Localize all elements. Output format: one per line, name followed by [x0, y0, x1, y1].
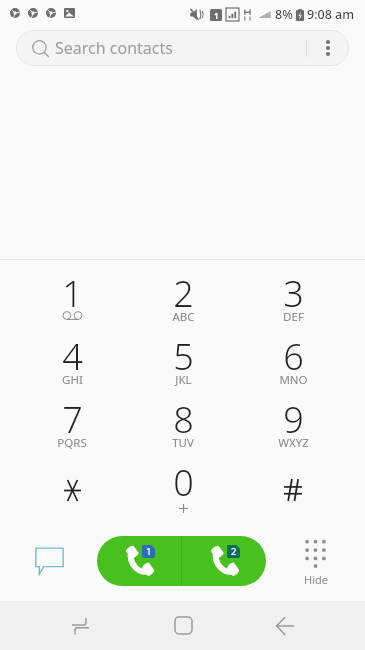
staticText: 9: [283, 395, 304, 444]
staticText: 2: [231, 545, 237, 558]
button[interactable]: Back: [251, 601, 319, 650]
staticText: MNO: [279, 372, 308, 388]
staticText: 5: [173, 332, 194, 381]
staticText: WXYZ: [278, 435, 309, 451]
staticText: 1: [214, 10, 219, 21]
button[interactable]: [253, 454, 333, 516]
button[interactable]: 7: [32, 391, 112, 453]
button[interactable]: 3: [253, 265, 333, 327]
button[interactable]: 6: [253, 328, 333, 390]
button[interactable]: 8: [143, 391, 223, 453]
staticText: TUV: [172, 435, 194, 451]
staticText: 2: [173, 269, 194, 318]
staticText: Search contacts: [55, 37, 173, 59]
staticText: 8%: [275, 6, 293, 23]
staticText: ABC: [172, 309, 195, 325]
button[interactable]: [32, 454, 112, 516]
staticText: 1: [62, 269, 83, 318]
staticText: 4: [62, 332, 83, 381]
button[interactable]: Call with SIM 1: [97, 536, 181, 586]
button[interactable]: 2: [143, 265, 223, 327]
staticText: Hide: [304, 572, 328, 587]
button[interactable]: 1: [32, 265, 112, 327]
staticText: 8: [173, 395, 194, 444]
button[interactable]: 0: [143, 454, 223, 516]
button[interactable]: Home: [149, 601, 217, 650]
button[interactable]: 4: [32, 328, 112, 390]
staticText: 1: [146, 545, 152, 558]
staticText: 6: [283, 332, 304, 381]
staticText: DEF: [283, 309, 304, 325]
staticText: GHI: [62, 372, 83, 388]
button[interactable]: Recents: [46, 601, 114, 650]
staticText: 0: [173, 458, 194, 507]
staticText: JKL: [175, 372, 192, 388]
button[interactable]: Call with SIM 2: [182, 536, 266, 586]
staticText: 9:08 am: [307, 6, 355, 23]
staticText: 7: [62, 395, 83, 444]
staticText: 3: [283, 269, 304, 318]
button[interactable]: 9: [253, 391, 333, 453]
button[interactable]: Hide: [291, 534, 340, 590]
staticText: PQRS: [57, 435, 87, 451]
button[interactable]: 5: [143, 328, 223, 390]
button[interactable]: Search contacts: [16, 30, 349, 66]
button[interactable]: More options: [307, 30, 349, 66]
button[interactable]: Message: [31, 542, 68, 579]
